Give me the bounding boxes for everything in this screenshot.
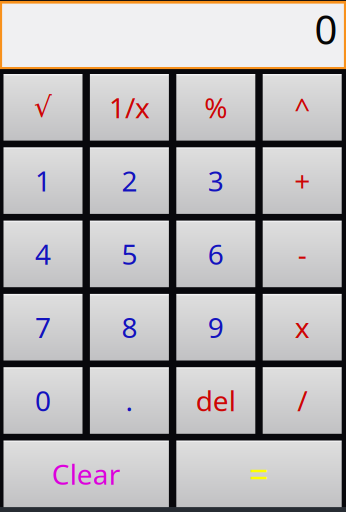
- button[interactable]: Minus: [263, 221, 342, 287]
- staticText: 7: [35, 309, 51, 346]
- button[interactable]: 5: [90, 221, 169, 287]
- button[interactable]: Percent: [176, 74, 255, 141]
- staticText: 0: [314, 2, 337, 55]
- button[interactable]: 3: [176, 147, 255, 214]
- staticText: 0: [35, 382, 51, 419]
- button[interactable]: Divide: [263, 367, 342, 434]
- staticText: -: [298, 235, 307, 272]
- button[interactable]: Clear: [3, 440, 169, 507]
- staticText: Clear: [52, 455, 121, 492]
- button[interactable]: Delete: [176, 367, 255, 434]
- button[interactable]: 2: [90, 147, 169, 214]
- staticText: √: [34, 91, 52, 123]
- staticText: .: [125, 382, 133, 419]
- staticText: x: [295, 309, 310, 346]
- staticText: 2: [121, 162, 137, 199]
- button[interactable]: 8: [90, 294, 169, 360]
- button[interactable]: 0: [3, 367, 82, 434]
- staticText: /: [297, 382, 307, 419]
- button[interactable]: 1: [3, 147, 82, 214]
- button[interactable]: Multiply: [263, 294, 342, 360]
- staticText: 3: [208, 162, 224, 199]
- staticText: ^: [294, 89, 310, 126]
- button[interactable]: 9: [176, 294, 255, 360]
- staticText: 6: [208, 235, 224, 272]
- button[interactable]: Reciprocal: [90, 74, 169, 141]
- staticText: +: [294, 162, 310, 199]
- staticText: =: [249, 451, 269, 497]
- button[interactable]: 7: [3, 294, 82, 360]
- staticText: 1: [35, 162, 51, 199]
- button[interactable]: 6: [176, 221, 255, 287]
- button[interactable]: Decimal point: [90, 367, 169, 434]
- staticText: 9: [208, 309, 224, 346]
- staticText: %: [204, 89, 227, 126]
- button[interactable]: 4: [3, 221, 82, 287]
- button[interactable]: Power: [263, 74, 342, 141]
- button[interactable]: Square root: [3, 74, 82, 141]
- staticText: 8: [121, 309, 137, 346]
- staticText: 1/x: [109, 89, 150, 126]
- button[interactable]: Plus: [263, 147, 342, 214]
- staticText: del: [196, 382, 236, 419]
- staticText: 5: [121, 235, 137, 272]
- button[interactable]: Equals: [176, 440, 342, 507]
- staticText: 4: [35, 235, 51, 272]
